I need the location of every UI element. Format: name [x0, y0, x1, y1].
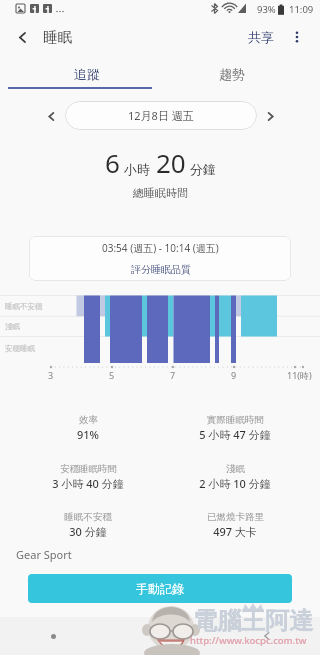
staticText: 5 [109, 369, 115, 381]
staticText: 11(時) [287, 369, 312, 381]
staticText: 電腦王阿達 [193, 606, 313, 636]
staticText: 2 小時 10 分鐘 [199, 476, 271, 491]
button[interactable]: Previous day [40, 105, 62, 127]
button[interactable]: Back [213, 617, 320, 655]
button[interactable]: 趨勢 [152, 61, 312, 87]
staticText: 5 小時 47 分鐘 [199, 427, 271, 442]
button[interactable]: 追蹤 [7, 61, 167, 87]
button[interactable]: Home [106, 617, 213, 655]
staticText: 3 [48, 369, 54, 381]
staticText: 實際睡眠時間 [207, 414, 264, 426]
staticText: 12月8日 週五 [128, 108, 194, 123]
staticText: 安穩睡眠時間 [60, 463, 117, 475]
staticText: 淺眠 [226, 463, 245, 475]
button[interactable]: 03:54 (週五) - 10:14 (週五) [29, 236, 291, 281]
staticText: 497 大卡 [213, 524, 257, 539]
staticText: 效率 [79, 414, 98, 426]
staticText: 11:09 [289, 3, 314, 16]
staticText: 已燃燒卡路里 [207, 511, 264, 523]
staticText: 總睡眠時間 [133, 186, 188, 200]
staticText: Gear Sport [16, 547, 72, 562]
button[interactable]: Next day [259, 105, 281, 127]
staticText: 20 [156, 145, 186, 180]
button[interactable]: 12月8日 週五 [65, 101, 257, 130]
button[interactable]: Back [5, 20, 39, 54]
staticText: 追蹤 [74, 66, 100, 82]
staticText: 淺眠 [5, 322, 20, 331]
staticText: 3 小時 40 分鐘 [52, 476, 124, 491]
staticText: 趨勢 [219, 66, 245, 82]
button[interactable]: Recents [0, 617, 106, 655]
button[interactable]: 共享 [240, 23, 282, 51]
staticText: 93% [257, 3, 276, 16]
staticText: 睡眠不安穩 [5, 302, 43, 311]
staticText: 安穩睡眠 [5, 344, 35, 353]
staticText: 共享 [248, 29, 274, 45]
staticText: http://www.kocpc.com.tw [190, 634, 307, 647]
staticText: 睡眠不安穩 [64, 511, 112, 523]
staticText: 91% [77, 427, 99, 442]
button[interactable]: 手動記錄 [28, 574, 292, 603]
staticText: 小時 [124, 161, 150, 177]
staticText: 睡眠 [43, 28, 72, 46]
staticText: 9 [231, 369, 237, 381]
staticText: 30 分鐘 [69, 524, 107, 539]
staticText: 03:54 (週五) - 10:14 (週五) [102, 241, 219, 255]
staticText: 6 [105, 145, 120, 180]
button[interactable]: More options [282, 22, 312, 52]
staticText: 7 [170, 369, 176, 381]
staticText: 分鐘 [190, 161, 216, 177]
staticText: 手動記錄 [136, 581, 184, 596]
staticText: 評分睡眠品質 [131, 263, 191, 276]
